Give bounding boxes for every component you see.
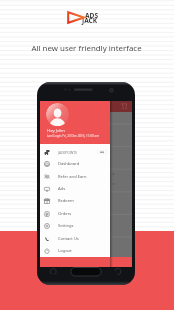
staticText: JACK [82,16,98,25]
staticText: ADS [85,11,99,20]
button[interactable]: Refer and Earn [40,171,110,183]
staticText: Settings [58,223,74,229]
staticText: Last Login Fri, 23 Dec 2016, 11:00 am [47,134,100,138]
button[interactable]: Contact Us [40,233,110,245]
staticText: Hey John [47,127,65,133]
staticText: Contact Us [58,236,79,242]
button[interactable]: Settings [40,220,110,232]
staticText: Refer and Earn [58,174,87,180]
staticText: Orders [58,211,72,217]
staticText: Ads [58,186,66,192]
button[interactable]: Redeem [40,195,110,207]
button[interactable]: Orders [40,208,110,220]
staticText: Redeem [58,198,74,204]
button[interactable]: Dashboard [40,158,110,170]
button[interactable]: Logout [40,245,110,257]
button[interactable]: Ads Jack logo [66,9,98,25]
staticText: Logout [58,248,72,254]
staticText: Dashboard [58,161,80,167]
staticText: JACKPOINTS [58,150,77,154]
staticText: All new user friendly interface [31,43,142,54]
button[interactable]: Ads [40,183,110,195]
button[interactable]: JACKPOINTS [40,146,110,158]
